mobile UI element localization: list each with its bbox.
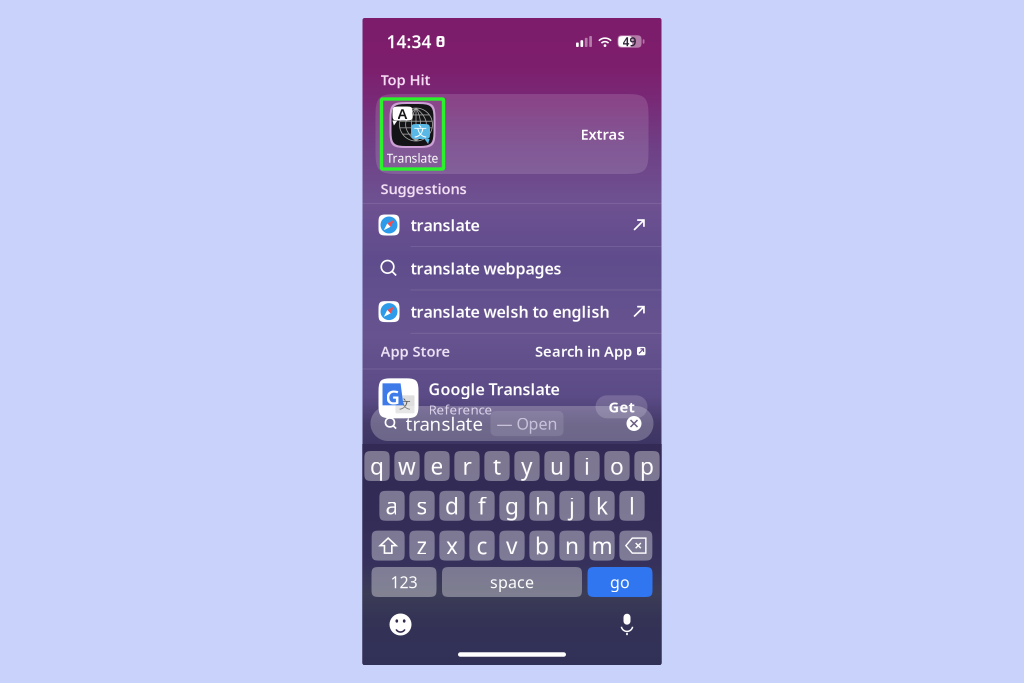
button[interactable]: c (469, 531, 495, 561)
staticText: m (591, 530, 612, 561)
staticText: 文 (399, 397, 411, 412)
button[interactable]: b (529, 531, 555, 561)
button[interactable]: a (379, 491, 405, 521)
button[interactable]: d (439, 491, 465, 521)
button[interactable]: 123 (371, 567, 436, 597)
button[interactable]: q (364, 451, 390, 481)
staticText: 123 (390, 571, 417, 593)
button[interactable]: translate (362, 204, 661, 247)
staticText: translate webpages (410, 258, 561, 279)
button[interactable]: A (362, 94, 661, 174)
button[interactable]: k (589, 491, 615, 521)
button[interactable]: Emoji (389, 613, 411, 635)
staticText: i (584, 451, 590, 481)
button[interactable]: s (409, 491, 435, 521)
button[interactable]: space (442, 567, 582, 597)
button[interactable]: h (529, 491, 555, 521)
button[interactable]: Search in App (535, 341, 645, 361)
staticText: translate welsh to english (410, 301, 609, 322)
staticText: Top Hit (380, 70, 430, 89)
staticText: k (596, 491, 608, 521)
staticText: w (398, 451, 416, 481)
staticText: G (385, 383, 400, 410)
staticText: a (385, 491, 398, 521)
staticText: r (462, 451, 471, 481)
staticText: p (640, 451, 654, 481)
button[interactable]: n (559, 531, 585, 561)
staticText: x (446, 530, 458, 561)
button[interactable]: r (454, 451, 480, 481)
button[interactable]: Dictate (619, 613, 634, 635)
staticText: Translate (386, 150, 438, 166)
button[interactable]: m (589, 531, 615, 561)
staticText: App Store (380, 341, 450, 361)
staticText: — Open (496, 413, 557, 434)
staticText: Extras (580, 124, 624, 144)
button[interactable]: p (634, 451, 660, 481)
button[interactable]: f (469, 491, 495, 521)
button[interactable]: z (409, 531, 435, 561)
staticText: h (535, 491, 549, 521)
staticText: g (505, 491, 519, 521)
staticText: e (430, 451, 443, 481)
staticText: Reference (428, 401, 492, 418)
button[interactable]: y (514, 451, 540, 481)
button[interactable]: 文 (362, 369, 661, 427)
staticText: n (565, 530, 579, 561)
staticText: u (550, 451, 564, 481)
button[interactable]: x (439, 531, 465, 561)
button[interactable]: t (484, 451, 510, 481)
staticText: o (610, 451, 624, 481)
staticText: 14:34 (386, 30, 431, 53)
staticText: t (493, 451, 501, 481)
button[interactable]: u (544, 451, 570, 481)
button[interactable]: i (574, 451, 600, 481)
button[interactable]: o (604, 451, 630, 481)
staticText: 文 (414, 123, 427, 140)
staticText: Google Translate (428, 378, 559, 399)
staticText: z (416, 530, 427, 561)
button[interactable]: v (499, 531, 525, 561)
button[interactable]: l (619, 491, 645, 521)
staticText: d (445, 491, 459, 521)
staticText: q (370, 451, 384, 481)
staticText: v (506, 530, 518, 561)
button[interactable]: go (587, 567, 652, 597)
staticText: Get (608, 397, 634, 417)
staticText: translate (405, 411, 483, 436)
staticText: l (629, 491, 635, 521)
staticText: Suggestions (380, 179, 466, 198)
staticText: s (416, 491, 427, 521)
staticText: c (476, 530, 487, 561)
staticText: translate (410, 214, 479, 236)
button[interactable]: translate (362, 402, 661, 444)
staticText: j (569, 491, 575, 521)
staticText: 49 (622, 33, 636, 49)
button[interactable]: w (394, 451, 420, 481)
staticText: Search in App (535, 341, 632, 361)
button[interactable]: g (499, 491, 525, 521)
staticText: space (490, 571, 534, 593)
button[interactable]: e (424, 451, 450, 481)
button[interactable]: j (559, 491, 585, 521)
button[interactable]: translate webpages (362, 247, 661, 290)
staticText: y (521, 451, 533, 481)
staticText: A (397, 104, 407, 123)
button[interactable]: Delete (619, 531, 652, 561)
staticText: f (478, 491, 486, 521)
staticText: go (610, 571, 630, 593)
button[interactable]: translate welsh to english (362, 290, 661, 334)
button[interactable]: Shift (372, 531, 405, 561)
staticText: b (535, 530, 549, 561)
